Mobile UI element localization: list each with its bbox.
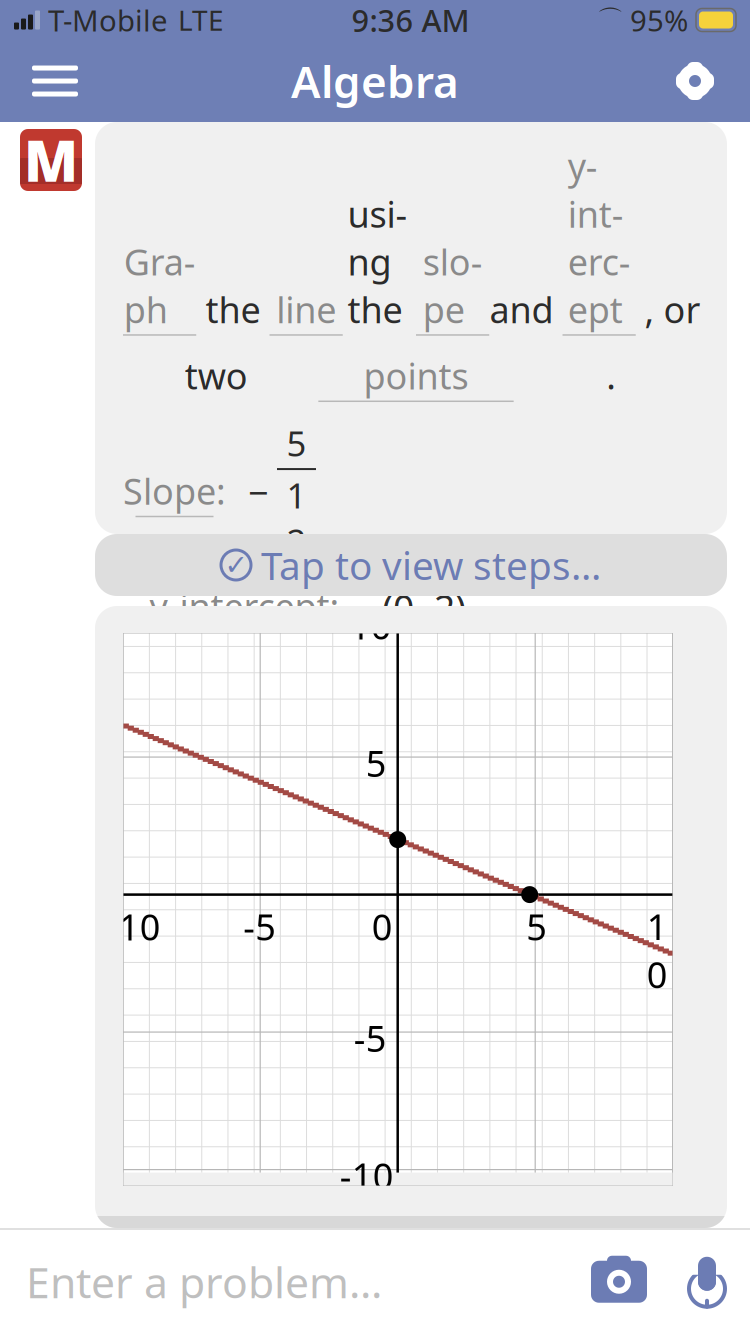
- staticText: -10: [340, 1152, 394, 1199]
- button[interactable]: Settings: [652, 42, 738, 120]
- staticText: 0: [372, 903, 393, 950]
- staticText: (0, 2): [372, 583, 466, 632]
- staticText: -5: [354, 1014, 387, 1062]
- staticText: y-intercept:: [149, 582, 339, 630]
- button[interactable]: Menu: [12, 42, 98, 120]
- staticText: two: [185, 352, 257, 399]
- staticText: and: [489, 238, 562, 333]
- staticText: 95%: [630, 0, 688, 39]
- staticText: 5: [366, 739, 387, 787]
- staticText: y-intercept: [568, 142, 631, 333]
- button[interactable]: Enter a problem...: [0, 1230, 574, 1334]
- staticText: slope: [423, 238, 483, 333]
- staticText: Algebra: [291, 52, 459, 110]
- staticText: 10: [350, 602, 392, 649]
- staticText: 5: [286, 420, 306, 466]
- staticText: line: [276, 285, 336, 333]
- staticText: Graph: [124, 238, 196, 333]
- staticText: y: [223, 642, 241, 688]
- staticText: ✓: [224, 549, 247, 581]
- staticText: 24: [162, 692, 178, 767]
- staticText: , or: [644, 285, 700, 333]
- staticText: the: [196, 285, 269, 333]
- staticText: -10: [107, 903, 161, 950]
- staticText: points: [363, 352, 468, 399]
- staticText: x: [161, 642, 179, 688]
- staticText: using the: [347, 142, 411, 333]
- button[interactable]: Scan problem with camera: [574, 1230, 664, 1334]
- button[interactable]: Voice input: [664, 1230, 750, 1334]
- staticText: 10: [647, 903, 668, 998]
- staticText: M: [24, 123, 78, 197]
- staticText: 9:36 AM: [351, 0, 469, 40]
- staticText: ⌒: [597, 4, 624, 36]
- staticText: 5: [162, 773, 178, 810]
- staticText: −: [230, 468, 269, 516]
- staticText: 12: [286, 472, 306, 564]
- staticText: 0: [160, 681, 180, 727]
- staticText: 0: [222, 728, 242, 774]
- staticText: T-Mobile: [48, 0, 168, 39]
- staticText: LTE: [178, 1, 224, 39]
- staticText: 5: [526, 903, 547, 950]
- staticText: Slope:: [123, 467, 226, 515]
- staticText: Enter a problem...: [26, 1253, 382, 1310]
- staticText: -5: [243, 903, 276, 950]
- button[interactable]: ✓: [95, 534, 727, 596]
- staticText: 2: [222, 681, 242, 727]
- staticText: .: [606, 352, 616, 399]
- staticText: Tap to view steps...: [261, 539, 601, 591]
